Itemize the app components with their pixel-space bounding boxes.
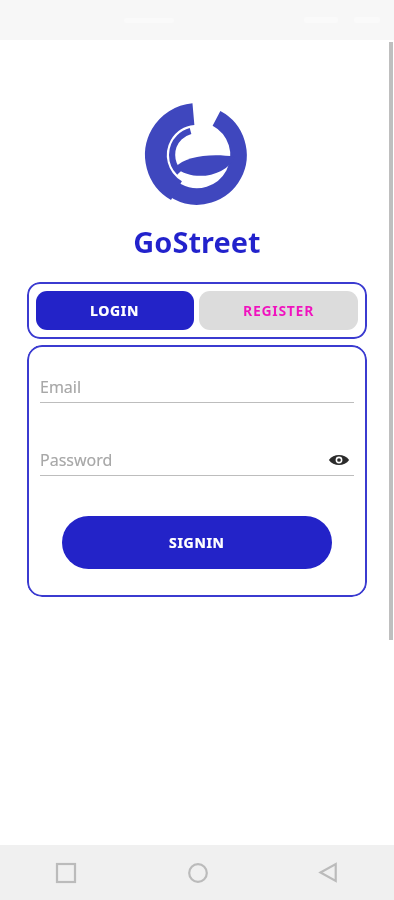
- button[interactable]: LOGIN: [36, 291, 194, 330]
- button[interactable]: Show password: [324, 445, 354, 475]
- staticText: Password: [40, 449, 113, 471]
- button[interactable]: Home: [132, 845, 263, 900]
- button[interactable]: SIGNIN: [62, 516, 332, 569]
- button[interactable]: Email: [40, 372, 354, 402]
- staticText: Email: [40, 376, 82, 398]
- other: GoStreet logo: [147, 105, 247, 205]
- staticText: LOGIN: [90, 301, 140, 320]
- staticText: REGISTER: [243, 301, 315, 320]
- button[interactable]: Back: [263, 845, 394, 900]
- staticText: GoStreet: [133, 222, 261, 261]
- button[interactable]: Recent apps: [0, 845, 132, 900]
- staticText: SIGNIN: [169, 533, 225, 552]
- button[interactable]: Password: [40, 445, 354, 475]
- button[interactable]: REGISTER: [199, 291, 358, 330]
